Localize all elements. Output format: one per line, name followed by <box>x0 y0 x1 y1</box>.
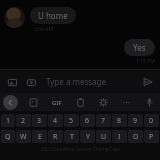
button[interactable]: R <box>48 130 63 143</box>
staticText: O <box>133 132 139 142</box>
button[interactable]: 4 <box>48 114 63 127</box>
staticText: I <box>118 132 121 142</box>
button[interactable]: I <box>112 130 127 143</box>
button[interactable]: 8 <box>112 114 127 127</box>
button[interactable]: 2 <box>16 114 31 127</box>
button[interactable]: Type a message <box>46 76 140 87</box>
button[interactable]: U <box>96 130 111 143</box>
button[interactable]: Settings <box>96 95 111 110</box>
button[interactable]: 0 <box>144 114 159 127</box>
button[interactable]: Voice input <box>142 95 157 110</box>
staticText: 2023 Deadline Nation ChampCaps <box>40 146 121 153</box>
staticText: U home <box>38 10 68 21</box>
staticText: 4 <box>53 116 58 126</box>
button[interactable]: Clipboard <box>73 95 88 110</box>
staticText: 3:34 AM <box>34 26 53 33</box>
button[interactable]: 6 <box>80 114 95 127</box>
staticText: P <box>149 132 154 142</box>
button[interactable]: 1 <box>1 114 15 127</box>
staticText: U <box>101 132 107 142</box>
button[interactable]: Back <box>3 95 18 110</box>
staticText: R <box>53 132 58 142</box>
button[interactable]: 7 <box>96 114 111 127</box>
staticText: 2 <box>21 116 26 126</box>
button[interactable]: Yes <box>124 39 155 56</box>
staticText: 8 <box>117 116 122 126</box>
button[interactable]: P <box>144 130 159 143</box>
staticText: 1:15 PM <box>136 58 155 65</box>
staticText: W <box>20 132 27 142</box>
staticText: 5 <box>69 116 74 126</box>
staticText: 0 <box>149 116 154 126</box>
button[interactable]: Q <box>1 130 15 143</box>
staticText: Y <box>86 132 90 142</box>
staticText: E <box>38 132 42 142</box>
button[interactable]: Sender avatar <box>4 7 25 28</box>
button[interactable]: Send <box>140 74 156 90</box>
staticText: Yes <box>133 42 146 53</box>
staticText: 6 <box>85 116 90 126</box>
button[interactable]: Take photo <box>23 74 39 90</box>
button[interactable]: W <box>16 130 31 143</box>
button[interactable]: Insert image <box>4 74 20 90</box>
staticText: GIF <box>52 99 62 107</box>
button[interactable]: U home <box>30 7 76 24</box>
button[interactable]: Stickers <box>26 95 41 110</box>
button[interactable]: 5 <box>64 114 79 127</box>
button[interactable]: GIF <box>49 95 64 110</box>
staticText: 1 <box>6 116 11 126</box>
staticText: 3 <box>37 116 42 126</box>
button[interactable]: 9 <box>128 114 143 127</box>
staticText: 7 <box>101 116 106 126</box>
button[interactable]: T <box>64 130 79 143</box>
staticText: Type a message <box>46 76 107 87</box>
button[interactable]: E <box>32 130 47 143</box>
button[interactable]: Y <box>80 130 95 143</box>
button[interactable]: O <box>128 130 143 143</box>
button[interactable]: 3 <box>32 114 47 127</box>
button[interactable]: More options <box>119 95 134 110</box>
staticText: T <box>70 132 74 142</box>
staticText: 9 <box>133 116 138 126</box>
staticText: Q <box>5 132 11 142</box>
